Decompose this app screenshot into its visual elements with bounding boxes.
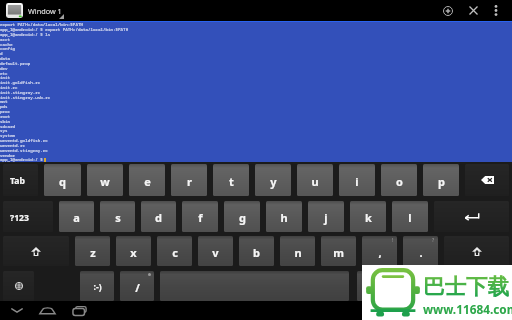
button[interactable]: Recent apps [64, 301, 95, 320]
button[interactable]: z [75, 236, 110, 266]
button[interactable]: Home [32, 301, 63, 320]
staticText: cache [0, 42, 13, 48]
staticText: r [187, 174, 192, 189]
button[interactable]: x [116, 236, 151, 266]
button[interactable]: Tab [3, 164, 38, 196]
button[interactable]: ?123 [3, 201, 53, 232]
staticText: dev [0, 66, 8, 72]
button[interactable]: Change keyboard language [3, 271, 34, 301]
staticText: i [355, 174, 359, 189]
button[interactable]: i [339, 164, 375, 196]
staticText: init.stingray.rc [0, 90, 41, 96]
button[interactable]: . [403, 236, 438, 266]
staticText: g [239, 210, 246, 225]
staticText: export PATH=/data/local/bin:$PATH [0, 22, 83, 28]
button[interactable]: u [297, 164, 333, 196]
button[interactable]: Shift [444, 236, 509, 266]
staticText: l [408, 210, 412, 225]
button[interactable] [357, 271, 509, 301]
button[interactable]: m [321, 236, 356, 266]
staticText: o [396, 174, 403, 189]
staticText: . [419, 245, 423, 260]
button[interactable]: Backspace [465, 164, 509, 196]
staticText: t [229, 174, 234, 189]
staticText: Tab [10, 175, 25, 187]
button[interactable]: d [141, 201, 176, 232]
staticText: a [73, 210, 80, 225]
staticText: v [212, 245, 219, 260]
button[interactable]: y [255, 164, 291, 196]
button[interactable]: o [381, 164, 417, 196]
staticText: w [100, 174, 110, 189]
staticText: y [270, 174, 277, 189]
button[interactable]: Window 1 [0, 0, 70, 21]
button[interactable]: Shift [3, 236, 69, 266]
staticText: sdcard [0, 124, 16, 130]
staticText: k [365, 210, 372, 225]
button[interactable]: Back [1, 301, 32, 320]
staticText: / [135, 280, 140, 295]
button[interactable] [160, 271, 349, 301]
button[interactable]: v [198, 236, 233, 266]
staticText: sbin [0, 119, 11, 125]
staticText: acct [0, 37, 11, 43]
staticText: init.rc [0, 85, 18, 91]
button[interactable]: e [129, 164, 165, 196]
staticText: p [438, 174, 445, 189]
staticText: d [0, 51, 3, 57]
staticText: ueventd.stingray.rc [0, 148, 48, 154]
button[interactable]: c [157, 236, 192, 266]
staticText: 巴士下载 [423, 273, 509, 300]
staticText: d [155, 210, 162, 225]
staticText: z [90, 245, 96, 260]
staticText: h [280, 210, 288, 225]
button[interactable]: n [280, 236, 315, 266]
staticText: , [378, 245, 382, 260]
staticText: vendor [0, 153, 16, 159]
staticText: init.goldfish.rc [0, 80, 41, 86]
staticText: ueventd.rc [0, 143, 26, 149]
button[interactable]: More options [480, 0, 512, 21]
staticText: :-) [93, 281, 102, 293]
button[interactable]: New window [424, 0, 472, 21]
button[interactable]: w [87, 164, 123, 196]
button[interactable]: f [182, 201, 218, 232]
staticText: x [130, 245, 137, 260]
button[interactable]: , [362, 236, 397, 266]
button[interactable]: t [213, 164, 249, 196]
staticText: sys [0, 128, 8, 134]
staticText: c [172, 245, 178, 260]
staticText: n [294, 245, 302, 260]
staticText: s [115, 210, 121, 225]
button[interactable]: p [423, 164, 459, 196]
staticText: app_1@android:/ $ [0, 157, 46, 163]
staticText: ?123 [10, 212, 29, 224]
button[interactable]: Enter [434, 201, 509, 232]
button[interactable]: Close window [449, 0, 497, 21]
button[interactable]: j [308, 201, 344, 232]
staticText: data [0, 56, 11, 62]
button[interactable]: s [100, 201, 135, 232]
staticText: m [333, 245, 344, 260]
button[interactable]: g [224, 201, 260, 232]
button[interactable]: l [392, 201, 428, 232]
staticText: ueventd.goldfish.rc [0, 138, 48, 144]
button[interactable]: a [59, 201, 94, 232]
staticText: www.11684.com [423, 301, 512, 317]
staticText: ? [432, 237, 435, 244]
staticText: u [311, 174, 319, 189]
button[interactable]: h [266, 201, 302, 232]
button[interactable]: b [239, 236, 274, 266]
staticText: etc [0, 71, 8, 77]
staticText: config [0, 46, 16, 52]
staticText: mnt [0, 99, 8, 105]
button[interactable]: k [350, 201, 386, 232]
staticText: app_1@android:/ $ export PATH=/data/loca… [0, 27, 129, 33]
staticText: Window 1 [28, 6, 62, 16]
button[interactable]: / [120, 271, 154, 301]
button[interactable]: r [171, 164, 207, 196]
staticText: b [253, 245, 260, 260]
staticText: proc [0, 109, 11, 115]
button[interactable]: :-) [80, 271, 114, 301]
button[interactable]: q [44, 164, 81, 196]
